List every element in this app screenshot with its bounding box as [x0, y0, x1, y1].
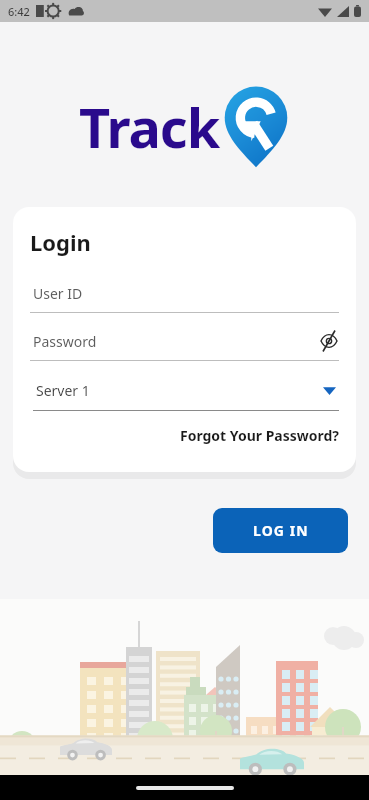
staticText: Track: [79, 90, 220, 164]
button[interactable]: LOG IN: [213, 508, 348, 553]
staticText: Server 1: [36, 381, 323, 400]
other: Show password: [319, 331, 339, 351]
staticText: User ID: [33, 284, 339, 303]
staticText: LOG IN: [253, 521, 309, 540]
staticText: 6:42: [8, 4, 30, 19]
staticText: Password: [33, 332, 319, 351]
button[interactable]: User ID: [30, 279, 339, 313]
staticText: Login: [30, 227, 91, 257]
button[interactable]: Forgot Your Password?: [179, 423, 339, 448]
button[interactable]: Password: [30, 327, 339, 361]
button[interactable]: Server 1: [30, 375, 339, 411]
